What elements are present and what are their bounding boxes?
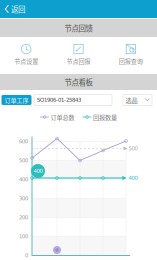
staticText: 200 <box>19 214 28 221</box>
staticText: 订单工序 <box>4 96 28 104</box>
staticText: 500 <box>19 157 28 164</box>
button[interactable]: 返回 <box>0 0 157 18</box>
staticText: 选品 <box>125 96 137 104</box>
staticText: 节点设置 <box>14 56 38 65</box>
button[interactable]: SO1906-01-25843 <box>34 94 112 105</box>
button[interactable]: 选品 <box>123 94 152 105</box>
staticText: 节点回报 <box>66 56 90 65</box>
staticText: 300 <box>19 195 28 202</box>
staticText: 返回 <box>11 4 25 14</box>
staticText: 400 <box>33 168 42 174</box>
button[interactable]: 订单工序 <box>1 95 31 105</box>
staticText: 400 <box>128 175 137 181</box>
button[interactable]: 节点设置 <box>0 42 52 67</box>
staticText: 回报数量 <box>93 113 117 121</box>
staticText: 节点看板 <box>64 77 92 87</box>
staticText: 600 <box>19 138 28 145</box>
staticText: 节点回馈 <box>64 23 92 33</box>
button[interactable]: 节点回报 <box>52 42 105 67</box>
staticText: 400 <box>19 176 28 183</box>
staticText: 0 <box>25 252 28 259</box>
staticText: 500 <box>128 145 137 152</box>
staticText: 回报查询 <box>119 56 143 65</box>
staticText: 订单总数 <box>50 113 74 121</box>
staticText: 100 <box>19 233 28 240</box>
staticText: SO1906-01-25843 <box>37 97 81 103</box>
button[interactable]: 回报查询 <box>105 42 157 67</box>
